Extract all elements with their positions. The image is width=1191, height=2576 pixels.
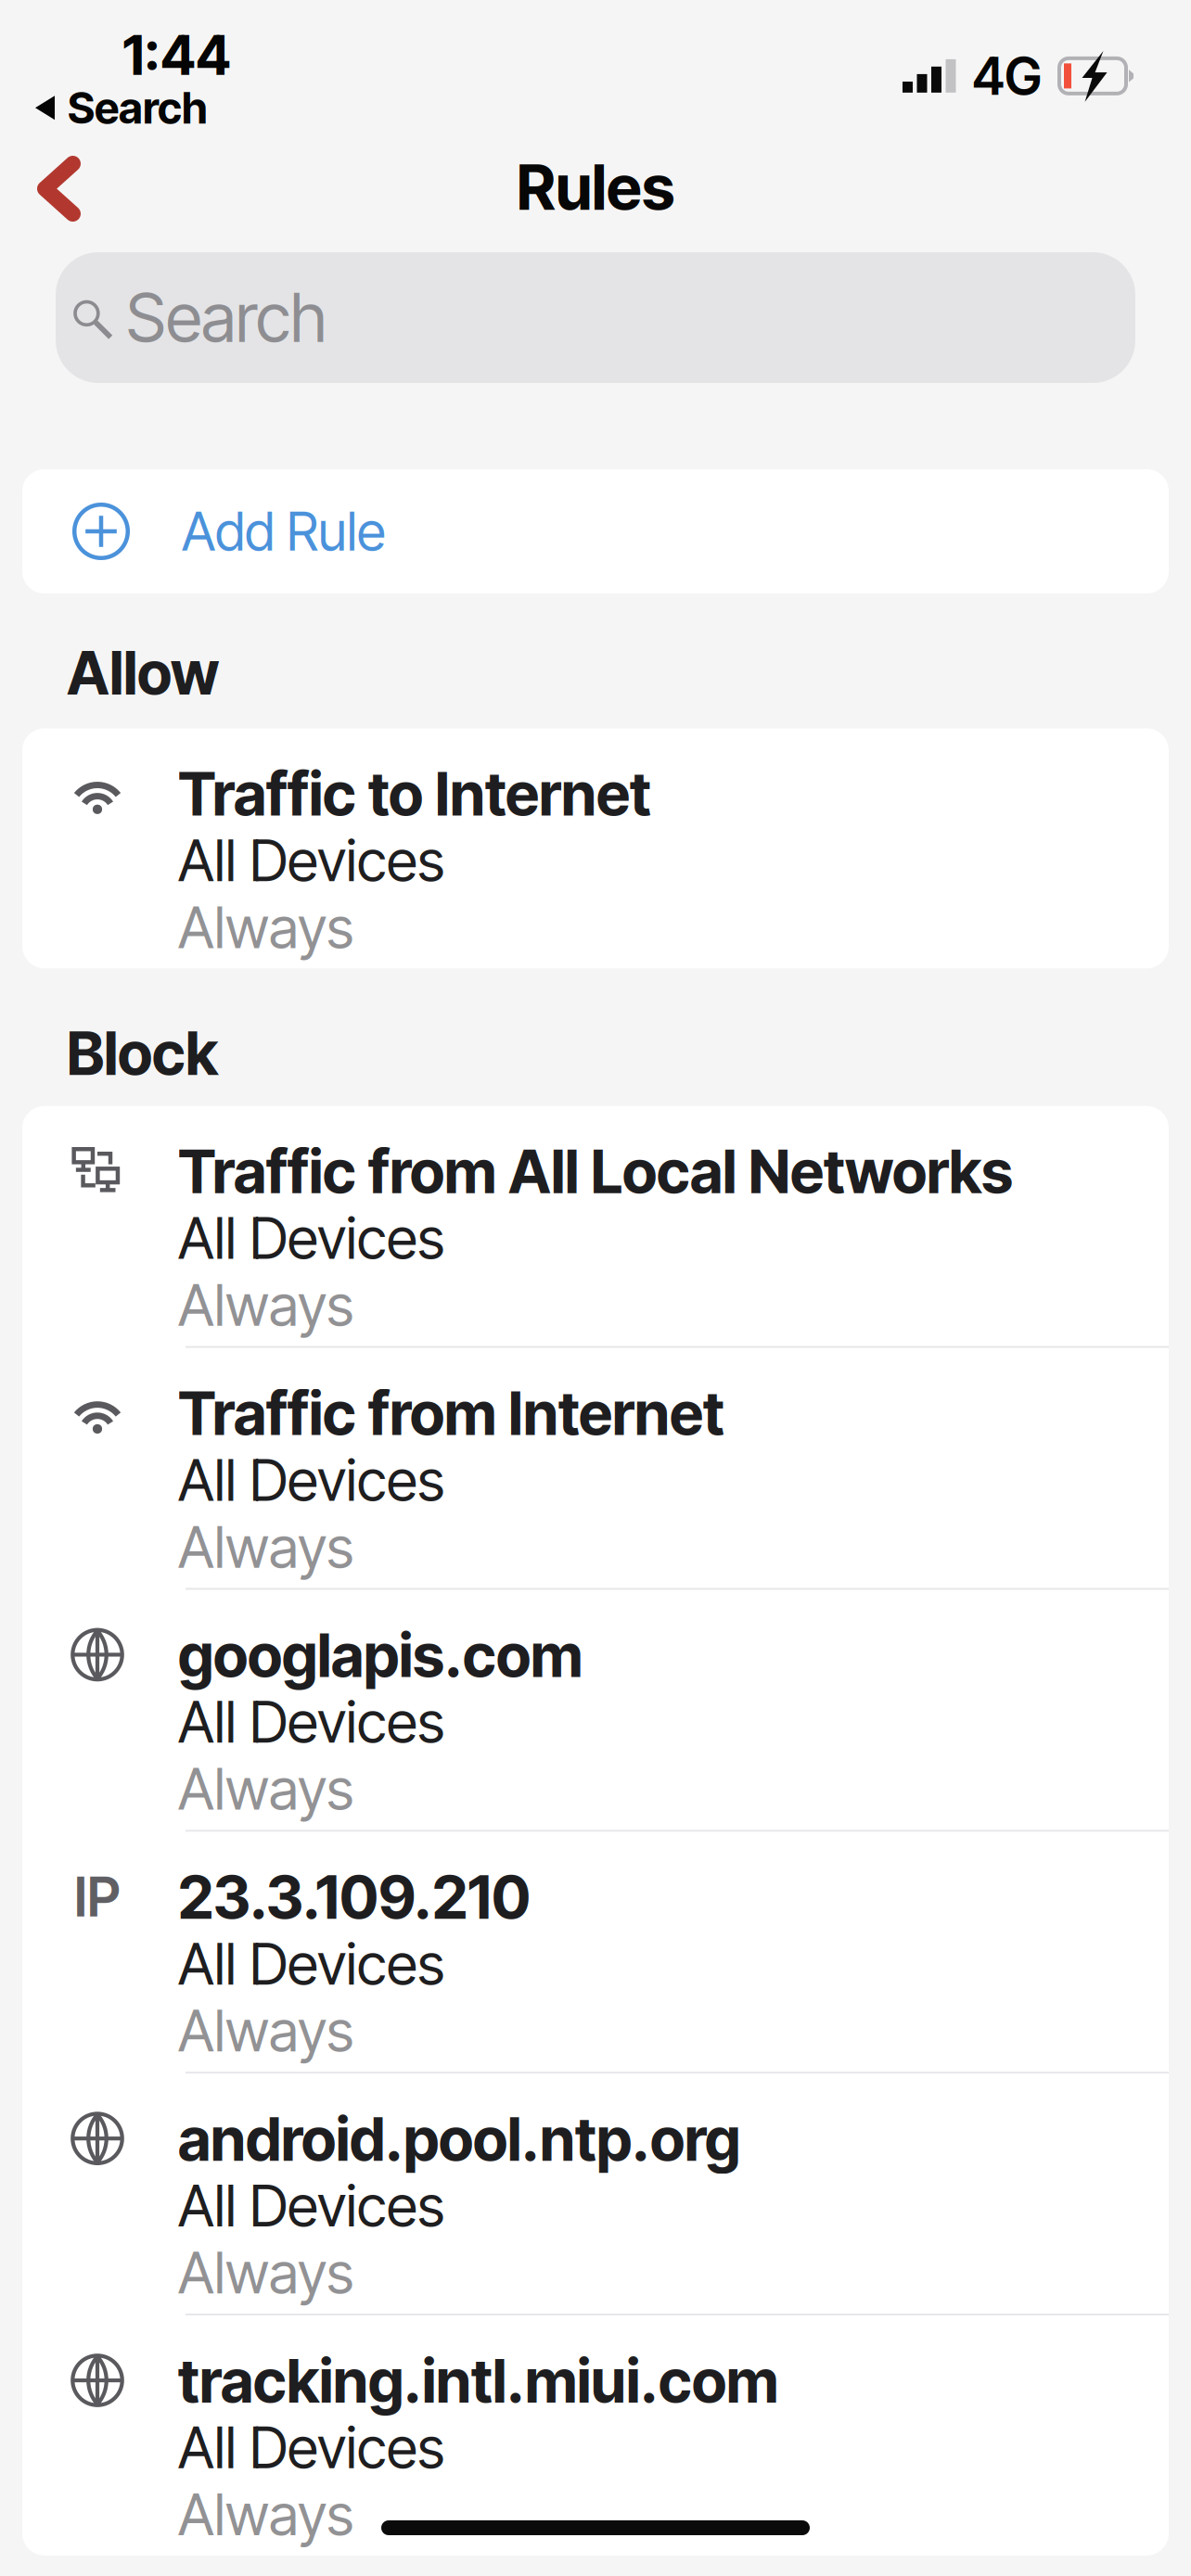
staticText: Always (178, 2238, 353, 2307)
button[interactable]: android.pool.ntp.org (22, 2074, 1169, 2316)
staticText: All Devices (178, 2171, 444, 2240)
staticText: Allow (67, 637, 219, 709)
staticText: Traffic to Internet (178, 758, 651, 830)
button[interactable]: Traffic to Internet (22, 728, 1169, 968)
button[interactable]: tracking.intl.miui.com (22, 2315, 1169, 2556)
staticText: Always (178, 1755, 353, 1823)
staticText: 1:44 (122, 22, 231, 88)
staticText: Always (178, 2480, 353, 2549)
staticText: android.pool.ntp.org (178, 2103, 740, 2175)
button[interactable]: Search (56, 252, 1135, 383)
staticText: Block (67, 1018, 218, 1089)
staticText: Rules (517, 150, 674, 225)
staticText: Always (178, 1996, 353, 2065)
button[interactable]: IP (22, 1832, 1169, 2074)
staticText: All Devices (178, 1929, 444, 1998)
staticText: Search (68, 82, 208, 134)
button[interactable]: googlapis.com (22, 1590, 1169, 1832)
staticText: 23.3.109.210 (178, 1861, 531, 1933)
button[interactable]: Back (0, 162, 81, 222)
button[interactable]: Add Rule (22, 469, 1169, 593)
staticText: IP (74, 1864, 121, 1929)
staticText: tracking.intl.miui.com (178, 2345, 778, 2417)
staticText: Always (178, 1513, 353, 1581)
staticText: All Devices (178, 1446, 444, 1514)
staticText: Search (126, 277, 327, 358)
staticText: All Devices (178, 826, 444, 895)
staticText: Add Rule (182, 499, 386, 564)
staticText: All Devices (178, 1688, 444, 1756)
staticText: Always (178, 893, 353, 962)
staticText: All Devices (178, 2413, 444, 2482)
staticText: Traffic from Internet (178, 1378, 724, 1449)
staticText: Traffic from All Local Networks (178, 1136, 1013, 1207)
staticText: Always (178, 1271, 353, 1340)
staticText: googlapis.com (178, 1619, 583, 1691)
staticText: 4G (972, 45, 1042, 107)
button[interactable]: Traffic from Internet (22, 1348, 1169, 1590)
button[interactable]: Traffic from All Local Networks (22, 1106, 1169, 1348)
staticText: All Devices (178, 1204, 444, 1273)
